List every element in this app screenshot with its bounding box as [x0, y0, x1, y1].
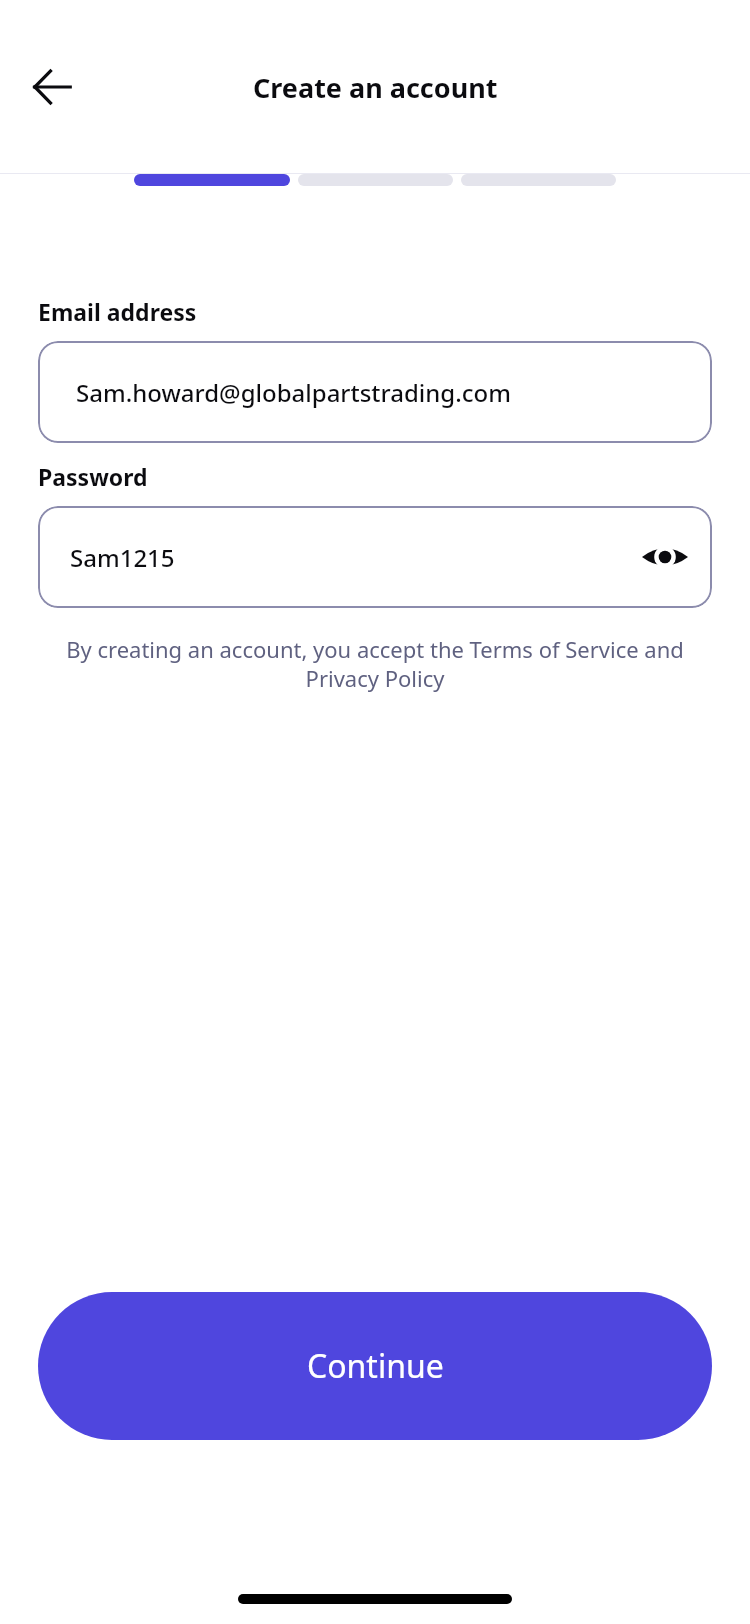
- staticText: Password: [38, 461, 148, 492]
- button[interactable]: Sam.howard@globalpartstrading.com: [38, 341, 712, 443]
- button[interactable]: Sam1215: [38, 506, 712, 608]
- button[interactable]: Continue: [38, 1292, 712, 1440]
- staticText: Continue: [307, 1344, 444, 1388]
- staticText: Sam.howard@globalpartstrading.com: [76, 376, 511, 409]
- button[interactable]: Back: [20, 55, 84, 119]
- button[interactable]: Show password: [636, 528, 694, 586]
- staticText: By creating an account, you accept the T…: [60, 634, 690, 693]
- staticText: Sam1215: [70, 541, 175, 574]
- staticText: Create an account: [253, 69, 498, 106]
- staticText: Email address: [38, 296, 197, 327]
